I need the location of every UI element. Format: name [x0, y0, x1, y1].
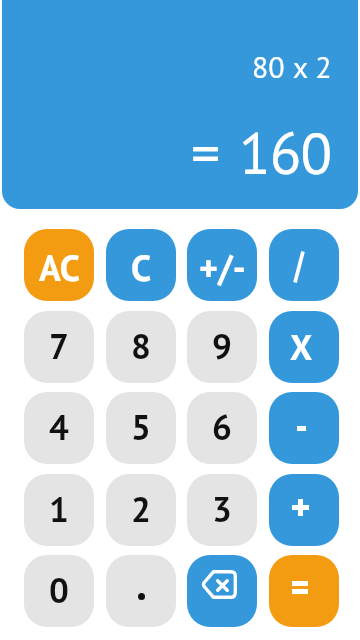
staticText: AC [39, 244, 80, 291]
staticText: 80 x 2 [252, 47, 332, 86]
button[interactable]: 0 [24, 555, 94, 627]
staticText: 6 [212, 404, 232, 449]
button[interactable] [269, 474, 339, 546]
staticText: C [131, 244, 152, 291]
staticText: 5 [131, 404, 151, 449]
staticText: 3 [212, 486, 232, 531]
button[interactable]: 1 [24, 474, 94, 546]
button[interactable]: AC [24, 229, 94, 301]
button[interactable] [269, 555, 339, 627]
staticText: X [290, 324, 313, 369]
staticText: 4 [49, 404, 69, 449]
button[interactable]: 9 [187, 311, 257, 383]
button[interactable]: C [106, 229, 176, 301]
button[interactable]: 3 [187, 474, 257, 546]
staticText: 8 [131, 323, 151, 368]
staticText: = [191, 115, 221, 190]
staticText: 2 [131, 486, 151, 531]
staticText: 160 [239, 115, 332, 190]
staticText: 7 [49, 323, 69, 368]
button[interactable]: 8 [106, 311, 176, 383]
button[interactable]: 7 [24, 311, 94, 383]
staticText: 9 [212, 323, 232, 368]
button[interactable]: 6 [187, 392, 257, 464]
button[interactable] [269, 229, 339, 301]
button[interactable]: 5 [106, 392, 176, 464]
button[interactable]: 4 [24, 392, 94, 464]
staticText: 1 [49, 486, 69, 531]
button[interactable]: X [269, 311, 339, 383]
button[interactable]: 2 [106, 474, 176, 546]
button[interactable]: +/- [187, 229, 257, 301]
staticText: 0 [49, 567, 69, 612]
button[interactable] [269, 392, 339, 464]
button[interactable] [106, 555, 176, 627]
staticText: +/- [199, 244, 246, 291]
button[interactable] [187, 555, 257, 627]
